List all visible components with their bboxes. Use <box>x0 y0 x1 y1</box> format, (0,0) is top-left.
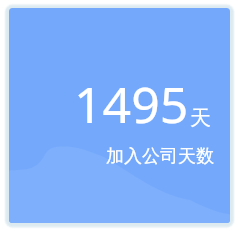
button[interactable]: 加入公司天数 1495 天 <box>9 8 230 223</box>
staticText: 加入公司天数 <box>106 145 214 168</box>
staticText: 1495 <box>74 70 189 138</box>
staticText: 天 <box>190 105 211 131</box>
